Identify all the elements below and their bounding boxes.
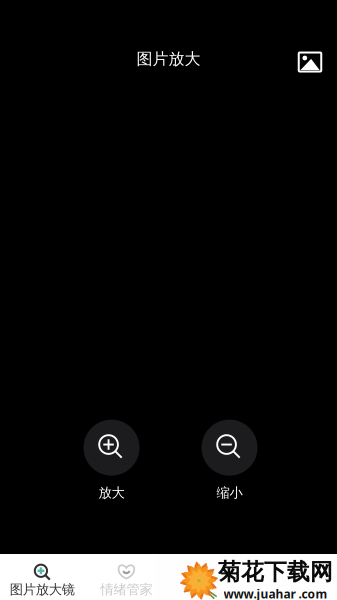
staticText: www.juahar .com [223, 586, 327, 600]
button[interactable]: 我的 [253, 550, 337, 600]
button[interactable]: 缩小 [186, 420, 272, 501]
staticText: 放大 [98, 485, 124, 501]
button[interactable]: 选择图片 [293, 44, 327, 78]
staticText: 情绪管家 [100, 581, 152, 598]
staticText: 菊花下载网 [218, 558, 333, 586]
staticText: 我的 [282, 581, 308, 598]
button[interactable]: 图片放大镜 [0, 550, 84, 600]
staticText: 图片放大镜 [10, 581, 75, 598]
staticText: 缩小 [216, 485, 242, 501]
button[interactable]: 放大 [68, 420, 154, 501]
button[interactable]: 情绪管家 [84, 550, 168, 600]
staticText: 图片放大 [136, 49, 200, 69]
staticText: 健康助手 [185, 581, 237, 598]
button[interactable]: 健康助手 [168, 550, 253, 600]
